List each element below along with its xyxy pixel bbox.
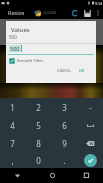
- staticText: OK: [79, 68, 85, 73]
- button[interactable]: .: [51, 152, 77, 168]
- staticText: 2: [36, 102, 41, 113]
- staticText: 0: [36, 155, 41, 166]
- button[interactable]: space: [77, 116, 103, 134]
- button[interactable]: OK: [77, 66, 87, 75]
- staticText: SQUARE: [43, 10, 57, 15]
- button[interactable]: del: [77, 134, 103, 152]
- button[interactable]: Recents: [69, 168, 103, 183]
- button[interactable]: Save: [81, 7, 93, 19]
- staticText: ,: [11, 155, 14, 166]
- staticText: 6: [62, 120, 67, 131]
- button[interactable]: More options: [93, 8, 102, 17]
- button[interactable]: 0: [25, 152, 51, 168]
- staticText: CANCEL: [57, 68, 72, 73]
- staticText: 500: [9, 34, 17, 40]
- button[interactable]: Rotate: [69, 7, 80, 18]
- button[interactable]: ,: [0, 152, 25, 168]
- button[interactable]: Back: [0, 168, 35, 183]
- staticText: 8: [36, 138, 41, 149]
- staticText: 7: [10, 138, 15, 149]
- button[interactable]: CANCEL: [55, 66, 74, 75]
- button[interactable]: 8: [25, 134, 51, 152]
- button[interactable]: 6: [51, 116, 77, 134]
- button[interactable]: 1: [0, 98, 25, 116]
- button[interactable]: Home: [35, 168, 69, 183]
- button[interactable]: done: [77, 152, 103, 168]
- staticText: 4: [10, 120, 15, 131]
- button[interactable]: 9: [51, 134, 77, 152]
- button[interactable]: 3: [51, 98, 77, 116]
- staticText: .: [63, 155, 66, 166]
- button[interactable]: 7: [0, 134, 25, 152]
- button[interactable]: Smooth Filter: [8, 57, 45, 65]
- button[interactable]: 4: [0, 116, 25, 134]
- staticText: -: [89, 102, 92, 113]
- staticText: 500: [10, 45, 20, 52]
- staticText: 9:14: [95, 1, 102, 6]
- staticText: Values: [11, 26, 30, 34]
- button[interactable]: 5: [25, 116, 51, 134]
- button[interactable]: 2: [25, 98, 51, 116]
- button[interactable]: -: [77, 98, 103, 116]
- staticText: Smooth Filter: [17, 58, 44, 64]
- staticText: Resize: [8, 9, 25, 16]
- staticText: 3: [62, 102, 67, 113]
- staticText: 1: [10, 102, 15, 113]
- staticText: 9: [62, 138, 67, 149]
- staticText: 5: [36, 120, 41, 131]
